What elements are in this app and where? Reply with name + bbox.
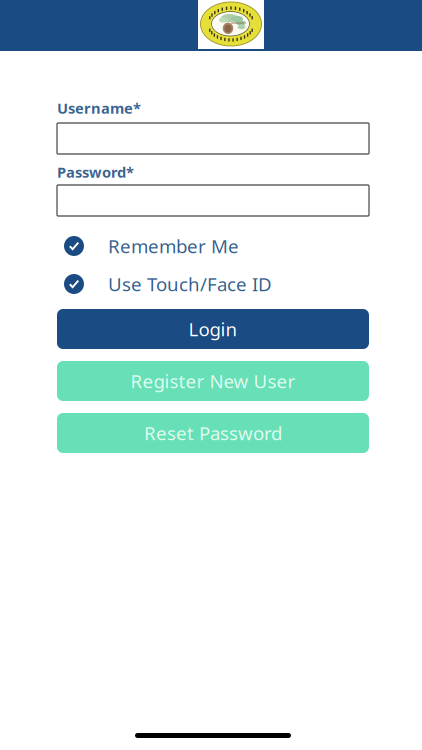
button[interactable]: Remember Me <box>57 233 369 259</box>
button[interactable]: Reset Password <box>57 413 369 453</box>
button[interactable]: Use Touch/Face ID <box>57 271 369 297</box>
staticText: Login <box>188 317 237 341</box>
button[interactable]: Password <box>57 185 369 216</box>
staticText: Password* <box>57 162 134 182</box>
staticText: Username* <box>57 98 141 118</box>
staticText: Register New User <box>130 369 295 393</box>
button[interactable]: Register New User <box>57 361 369 401</box>
staticText: Reset Password <box>144 421 282 445</box>
button[interactable]: Login <box>57 309 369 349</box>
staticText: Remember Me <box>108 234 239 258</box>
button[interactable]: Username <box>57 123 369 154</box>
staticText: Use Touch/Face ID <box>108 272 272 296</box>
